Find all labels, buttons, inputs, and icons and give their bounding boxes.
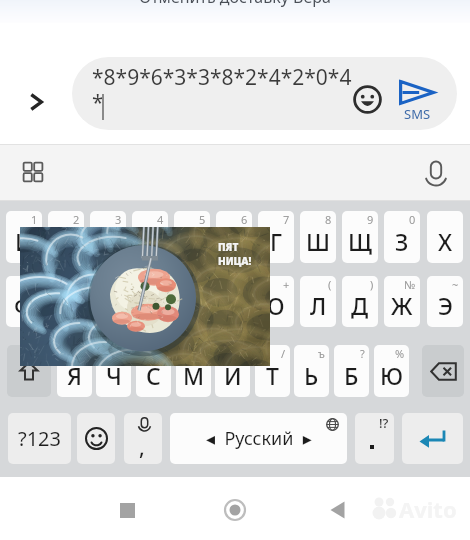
staticText: Ь [304,360,319,391]
button[interactable]: ; [215,345,250,397]
button[interactable]: Expand toolbar [17,82,57,122]
staticText: Д [351,290,369,321]
staticText: ! [85,346,88,361]
button[interactable]: Enter [402,413,463,464]
staticText: М [183,360,205,391]
button[interactable]: % [374,345,409,397]
button[interactable]: 8 [300,211,336,263]
button[interactable]: & [132,276,168,327]
staticText: Э [438,290,453,321]
staticText: Щ [348,226,372,257]
button[interactable]: ?123 [8,413,71,464]
button[interactable]: Backspace [422,345,464,397]
staticText: В [100,290,116,321]
staticText: 3 [115,212,122,227]
button[interactable]: Х [427,211,463,263]
staticText: ◂ Русский ▸ [206,426,312,451]
staticText: Ж [391,290,413,321]
staticText: Р [227,290,242,321]
button[interactable]: Emoji [353,85,382,114]
button[interactable]: * [174,276,210,327]
staticText: ~ [452,277,459,292]
button[interactable]: 3 [90,211,126,263]
button[interactable]: № [384,276,420,327]
button[interactable]: ' [136,345,171,397]
staticText: Г [270,226,283,257]
button[interactable]: 0 [384,211,420,263]
button[interactable]: Shift [7,345,51,397]
staticText: П [183,290,201,321]
staticText: * [199,277,206,292]
button[interactable]: ! [57,345,92,397]
staticText: № [404,277,416,292]
staticText: # [72,277,80,292]
button[interactable]: ₽ [90,276,126,327]
staticText: Ц [57,226,75,257]
staticText: ? [360,346,365,361]
button[interactable]: Back [316,489,358,531]
staticText: 1 [31,212,38,227]
button[interactable]: 7 [258,211,294,263]
button[interactable]: 5 [174,211,210,263]
button[interactable]: # [48,276,84,327]
button[interactable]: @ [6,276,42,327]
staticText: ) [370,277,374,292]
staticText: 5 [199,212,206,227]
staticText: Ю [380,360,404,391]
staticText: Т [266,360,279,391]
button[interactable]: Recents [106,489,148,531]
button[interactable]: Home [214,489,256,531]
button[interactable]: , [124,413,162,464]
button[interactable]: ? [334,345,369,397]
staticText: & [155,277,164,292]
staticText: Л [310,290,327,321]
staticText: К [143,226,158,257]
staticText: , [139,433,145,462]
staticText: Б [344,360,359,391]
button[interactable]: - [216,276,252,327]
staticText: 9 [367,212,374,227]
staticText: ъ [318,346,325,361]
staticText: З [395,226,409,257]
button[interactable]: Voice input [424,158,448,182]
button[interactable]: 1 [6,211,42,263]
button[interactable]: ( [300,276,336,327]
button[interactable]: Send SMS [394,77,440,123]
staticText: 7 [283,212,290,227]
button[interactable]: ) [342,276,378,327]
button[interactable]: / [255,345,290,397]
staticText: Ш [306,226,331,257]
staticText: У [101,226,116,257]
staticText: / [281,346,286,361]
staticText: Й [15,226,33,257]
button[interactable]: 9 [342,211,378,263]
staticText: 0 [409,212,416,227]
button[interactable]: Apps [21,160,45,184]
button[interactable]: " [96,345,131,397]
staticText: ПЯТ [218,240,239,254]
staticText: ( [328,277,332,292]
staticText: 4 [157,212,164,227]
button[interactable]: 6 [216,211,252,263]
button[interactable]: 4 [132,211,168,263]
staticText: @ [28,277,38,292]
staticText: ?123 [18,425,61,452]
staticText: Ы [56,290,77,321]
staticText: НИЦА! [218,254,252,268]
staticText: + [283,277,290,292]
staticText: Avito [399,494,457,524]
button[interactable]: : [176,345,211,397]
button[interactable]: !? [355,413,394,464]
button[interactable]: *8*9*6*3*3*8*2*4*2*0*4 [72,57,457,130]
staticText: А [142,290,158,321]
button[interactable]: + [258,276,294,327]
staticText: Ф [14,290,34,321]
staticText: Отменить доставку Вера [139,0,331,8]
button[interactable]: ◂ Русский ▸ [170,413,347,464]
button[interactable]: ~ [427,276,463,327]
staticText: 8 [325,212,332,227]
staticText: Е [186,226,199,257]
button[interactable]: 2 [48,211,84,263]
button[interactable]: ъ [294,345,329,397]
button[interactable]: Emoji keyboard [77,413,115,464]
